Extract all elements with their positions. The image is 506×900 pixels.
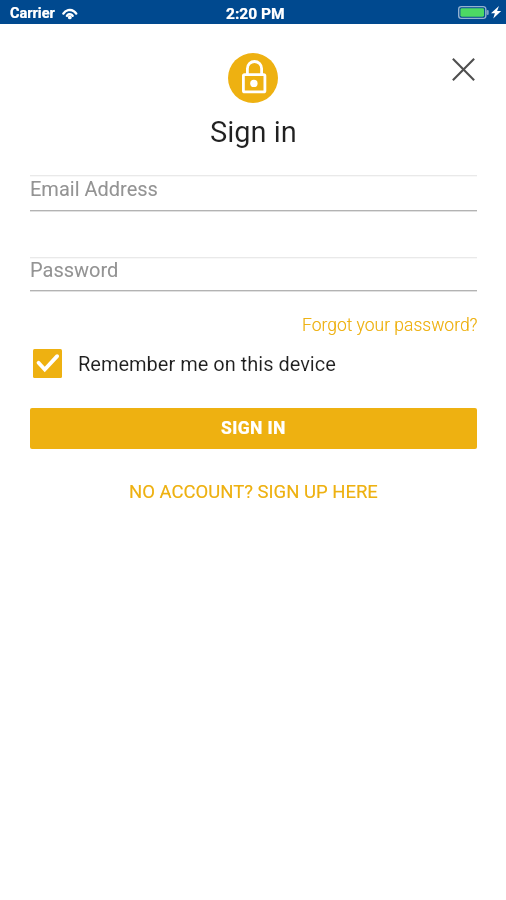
button[interactable]: Forgot your password? (302, 315, 478, 336)
staticText: Sign in (210, 115, 297, 149)
button[interactable]: Remember me on this device (33, 344, 336, 382)
staticText: SIGN IN (221, 418, 286, 439)
staticText: Password (30, 258, 119, 281)
button[interactable]: Email Address (30, 175, 477, 201)
staticText: Forgot your password? (302, 315, 478, 336)
button[interactable]: Close (439, 45, 487, 93)
staticText: Email Address (30, 177, 158, 200)
staticText: 2:20 PM (226, 5, 285, 23)
staticText: NO ACCOUNT? SIGN UP HERE (129, 481, 378, 503)
button[interactable]: Password (30, 256, 477, 282)
button[interactable]: NO ACCOUNT? SIGN UP HERE (129, 481, 378, 503)
staticText: Remember me on this device (78, 352, 336, 375)
staticText: Carrier (10, 5, 55, 22)
button[interactable]: SIGN IN (30, 408, 477, 449)
